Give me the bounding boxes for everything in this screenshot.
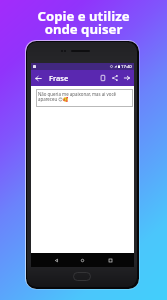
button[interactable]: Não queria me apaixonar, mas ai você apa… [36,89,133,107]
button[interactable]: Home [77,253,88,267]
staticText: Copie e utilize onde quiser [0,7,167,38]
staticText: 17:40 [121,64,132,70]
button[interactable]: Back [31,70,45,86]
button[interactable]: Back [51,253,62,267]
button[interactable]: Share [109,70,121,86]
button[interactable]: Copy [97,70,109,86]
button[interactable]: Send [121,70,133,86]
staticText: Não queria me apaixonar, mas ai você apa… [38,91,131,102]
button[interactable]: Recent apps [105,253,116,267]
staticText: Frase [49,73,69,83]
